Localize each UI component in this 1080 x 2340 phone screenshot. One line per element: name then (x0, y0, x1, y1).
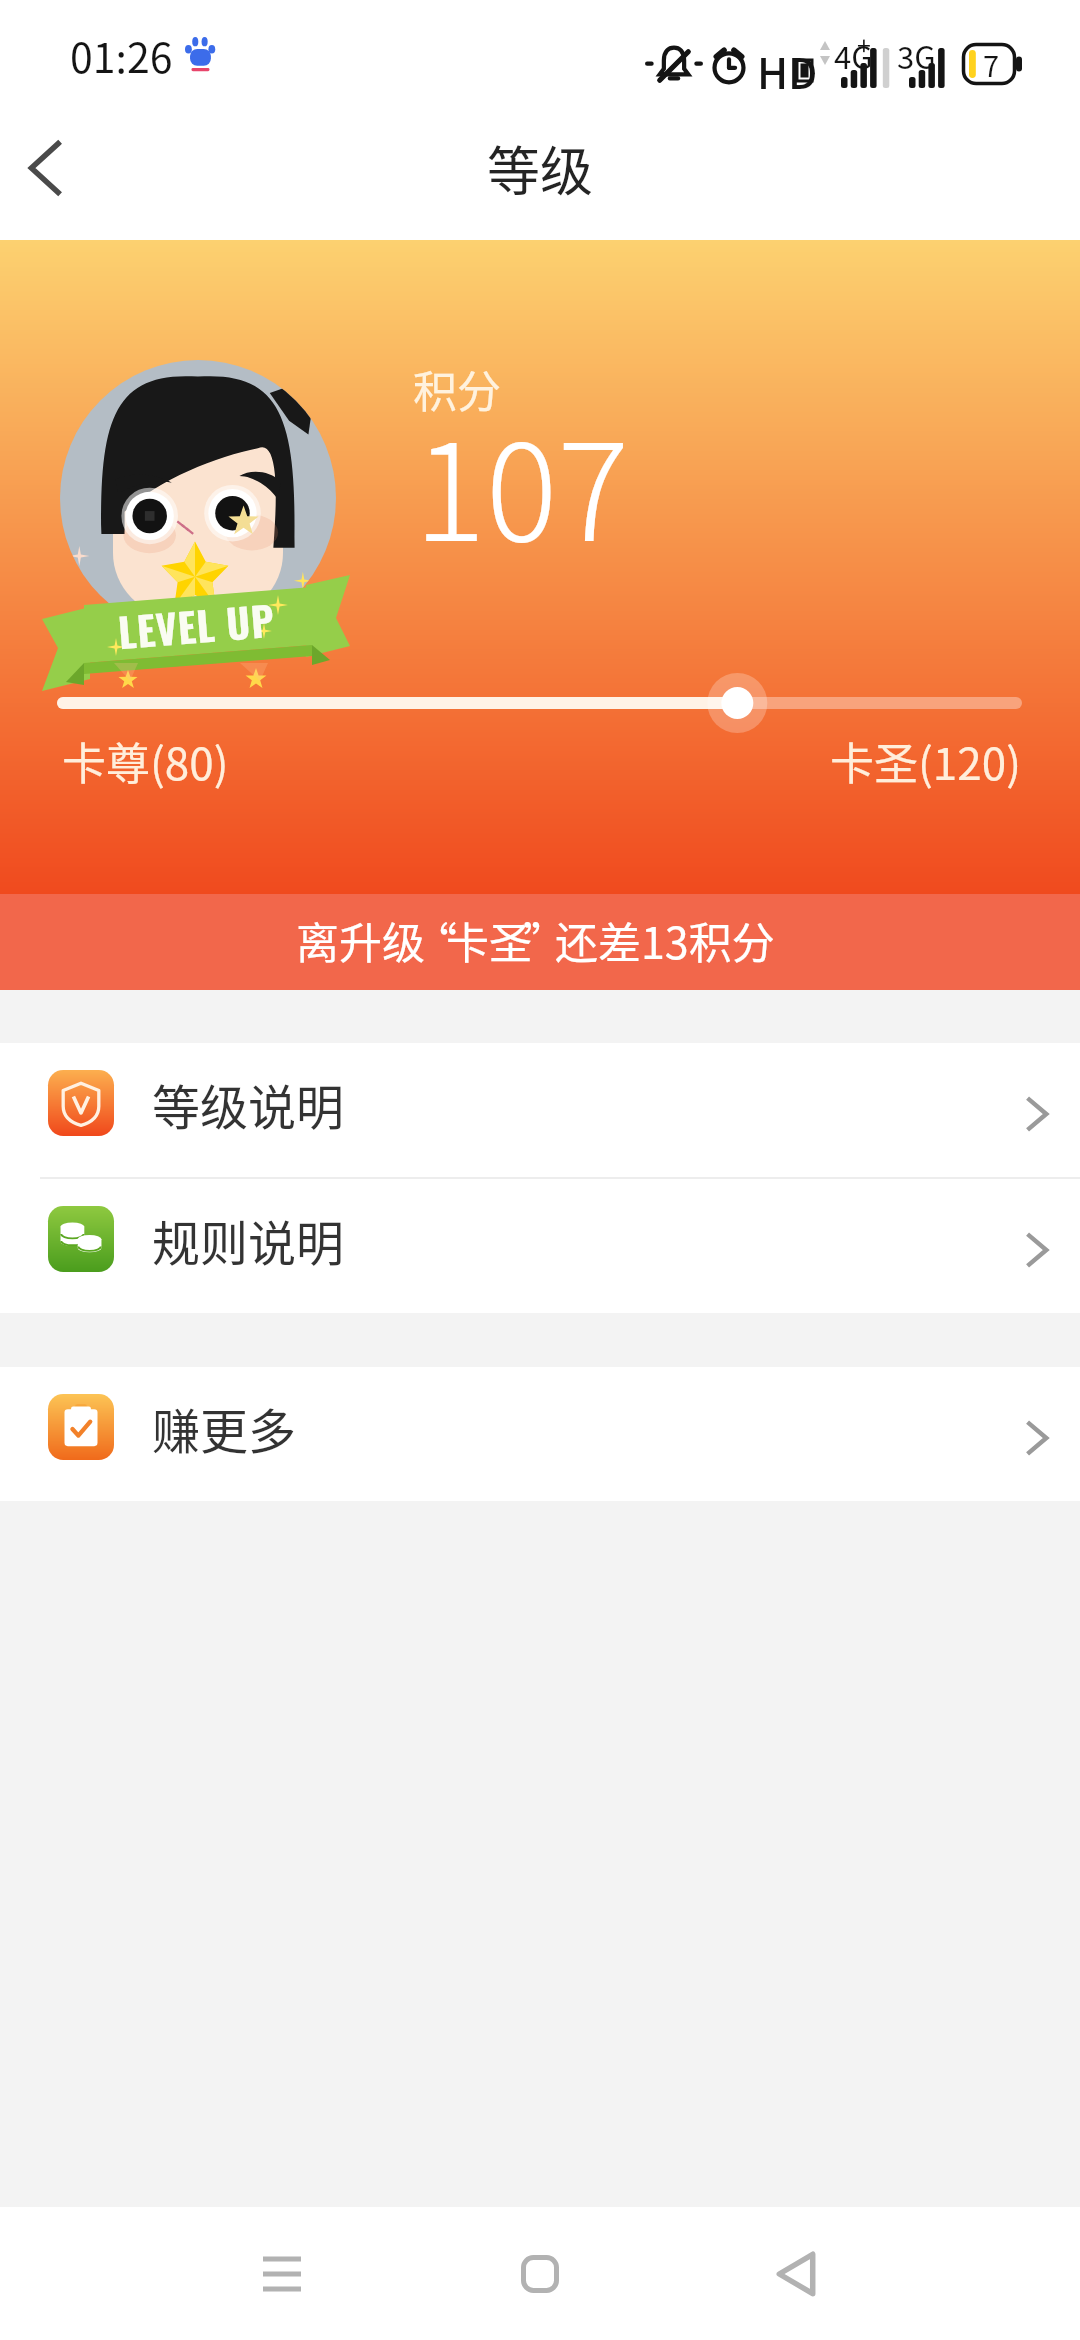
staticText: 卡圣(120) (830, 729, 1022, 793)
staticText: 卡圣 (446, 909, 532, 971)
staticText: 107 (414, 386, 630, 580)
staticText: 7 (983, 43, 1000, 85)
staticText: 3G (897, 33, 936, 78)
staticText: HD (757, 40, 818, 101)
staticText: 01:26 (70, 25, 173, 84)
staticText: 赚更多 (152, 1393, 297, 1463)
staticText: ” (523, 909, 566, 971)
staticText: “ (414, 909, 457, 971)
staticText: + (857, 26, 871, 62)
staticText: 等级说明 (152, 1069, 345, 1139)
button[interactable]: 等级说明 (0, 1043, 1080, 1177)
staticText: LEVEL UP (116, 589, 277, 660)
button[interactable]: Home (470, 2207, 610, 2340)
staticText: 还差13积分 (555, 909, 775, 971)
button[interactable]: Back (0, 110, 110, 240)
button[interactable]: 赚更多 (0, 1367, 1080, 1501)
staticText: 4G (834, 33, 873, 78)
staticText: 积分 (413, 357, 501, 421)
button[interactable]: 规则说明 (0, 1179, 1080, 1313)
staticText: 离升级 (296, 909, 425, 971)
button[interactable]: Recent apps (212, 2207, 352, 2340)
staticText: 等级 (487, 130, 593, 207)
staticText: 规则说明 (152, 1205, 345, 1275)
staticText: 卡尊(80) (62, 729, 229, 793)
button[interactable]: Back (726, 2207, 866, 2340)
